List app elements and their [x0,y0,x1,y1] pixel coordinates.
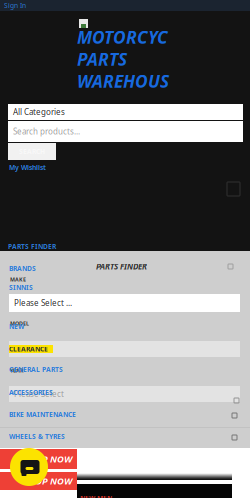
staticText: NEW [9,322,24,331]
staticText: MODEL [10,320,29,327]
button[interactable]: Collapse parts finder [228,264,233,269]
staticText: My Wishlist [9,163,46,172]
button[interactable]: SINNIS [9,283,69,292]
button[interactable]: Basket [227,182,240,196]
button[interactable]: ACCESSORIES [9,388,109,397]
staticText: BIKE MAINTENANCE [9,410,76,419]
staticText: NEW MEN... [80,493,118,498]
button[interactable]: Search products... [8,121,243,142]
staticText: SHOP NOW [23,475,72,487]
button[interactable]: SHOP NOW [0,472,77,490]
button[interactable]: Expand wheels and tyres [232,435,237,440]
button[interactable]: GENERAL PARTS [9,365,119,374]
staticText: GENERAL PARTS [9,365,63,374]
staticText: MOTORCYC [77,25,168,49]
button[interactable]: SHOP NOW [0,449,77,469]
staticText: Please Select [14,389,64,399]
button[interactable]: My Wishlist [9,163,89,172]
staticText: Sign In [4,1,26,10]
button[interactable]: Expand accessories [234,398,239,403]
button[interactable]: All Categories [8,104,243,120]
staticText: BRANDS [9,264,36,273]
button[interactable]: CLEARANCE [9,345,53,353]
button[interactable]: WHEELS & TYRES [9,432,129,441]
staticText: PARTS FINDER [96,261,147,272]
staticText: WAREHOUS [77,69,169,93]
staticText: MAKE [10,276,26,283]
staticText: WHEELS & TYRES [9,432,65,441]
staticText: SHOP NOW [23,453,72,465]
staticText: CLEARANCE [9,344,48,354]
button[interactable]: BRANDS [9,264,79,273]
button[interactable]: NEW [9,322,53,331]
staticText: SINNIS [9,283,33,292]
staticText: PARTS FINDER [8,242,56,251]
staticText: ACCESSORIES [9,388,53,397]
staticText: PARTS [77,47,127,71]
button[interactable]: Chat with us [10,448,48,486]
staticText: YEAR [10,367,23,374]
button[interactable]: Expand bike maintenance [232,413,237,418]
button[interactable]: Sign In [4,1,54,10]
staticText: Search products... [13,126,80,137]
staticText: All Categories [13,107,65,117]
staticText: Please Select ... [14,298,72,308]
button[interactable]: BIKE MAINTENANCE [9,410,139,419]
